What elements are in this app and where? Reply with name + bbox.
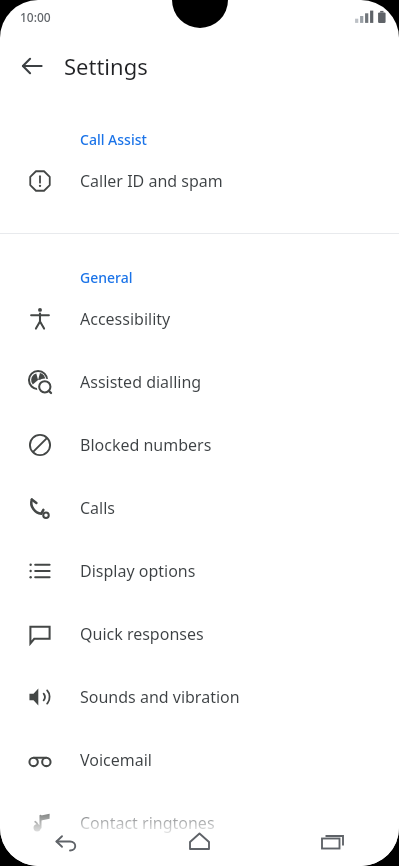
button[interactable]: Recent apps (266, 816, 399, 866)
button[interactable]: Quick responses (0, 602, 399, 665)
button[interactable]: Contact ringtones (0, 791, 399, 854)
staticText: Sounds and vibration (80, 686, 240, 708)
staticText: Contact ringtones (80, 812, 215, 834)
button[interactable]: Home (133, 816, 266, 866)
button[interactable]: Display options (0, 539, 399, 602)
button[interactable]: Assisted dialling (0, 350, 399, 413)
staticText: Quick responses (80, 623, 204, 645)
staticText: Assisted dialling (80, 371, 202, 393)
staticText: Voicemail (80, 749, 152, 771)
staticText: Settings (64, 51, 148, 81)
staticText: Caller ID and spam (80, 170, 223, 192)
staticText: General (80, 268, 133, 287)
button[interactable]: Caller ID and spam (0, 149, 399, 212)
staticText: Blocked numbers (80, 434, 212, 456)
staticText: Call Assist (80, 130, 147, 149)
staticText: Accessibility (80, 308, 171, 330)
button[interactable]: Back (8, 42, 56, 90)
button[interactable]: Voicemail (0, 728, 399, 791)
staticText: Display options (80, 560, 196, 582)
button[interactable]: Blocked numbers (0, 413, 399, 476)
staticText: 10:00 (20, 9, 51, 25)
button[interactable]: Back (0, 816, 133, 866)
button[interactable]: Sounds and vibration (0, 665, 399, 728)
button[interactable]: Accessibility (0, 287, 399, 350)
staticText: Calls (80, 497, 116, 519)
button[interactable]: Calls (0, 476, 399, 539)
